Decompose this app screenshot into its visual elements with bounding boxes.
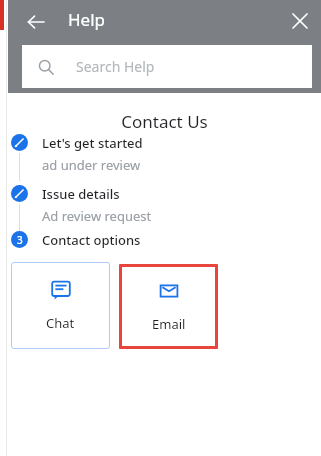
button[interactable]: Issue details [11, 185, 241, 225]
staticText: Email [152, 315, 186, 333]
button[interactable]: Search Help [22, 45, 312, 88]
staticText: Help [68, 8, 106, 31]
button[interactable]: Close [281, 2, 319, 40]
button[interactable]: Let's get started [11, 134, 241, 174]
staticText: ad under review [42, 156, 141, 174]
staticText: Search Help [76, 57, 155, 76]
staticText: Chat [46, 314, 75, 332]
staticText: Let's get started [42, 134, 143, 152]
staticText: Contact options [42, 231, 141, 249]
button[interactable]: Back [16, 2, 56, 42]
button[interactable]: 3 [11, 231, 241, 249]
staticText: Issue details [42, 185, 120, 203]
staticText: Contact Us [121, 110, 208, 133]
button[interactable]: Email [119, 264, 218, 349]
staticText: 3 [17, 233, 23, 247]
staticText: Ad review request [42, 207, 152, 225]
button[interactable]: Chat [11, 262, 110, 349]
